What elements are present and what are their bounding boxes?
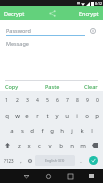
- staticText: Message: [6, 40, 29, 47]
- staticText: o: [85, 112, 89, 120]
- staticText: p: [95, 112, 99, 120]
- staticText: 8:12: [95, 1, 102, 6]
- staticText: 8: [76, 97, 79, 104]
- button[interactable]: c: [34, 139, 44, 152]
- staticText: c: [38, 142, 41, 150]
- button[interactable]: h: [57, 124, 67, 137]
- button[interactable]: Message: [6, 40, 97, 80]
- staticText: g: [50, 127, 54, 135]
- button[interactable]: Encrypt: [75, 6, 103, 20]
- button[interactable]: p: [92, 109, 102, 122]
- button[interactable]: Home: [37, 169, 59, 183]
- button[interactable]: z: [14, 139, 24, 152]
- button[interactable]: ,: [16, 154, 25, 167]
- button[interactable]: u: [62, 109, 72, 122]
- button[interactable]: o: [82, 109, 92, 122]
- button[interactable]: 7: [62, 93, 72, 107]
- button[interactable]: 6: [52, 93, 62, 107]
- button[interactable]: 3: [22, 93, 32, 107]
- button[interactable]: m: [77, 139, 88, 152]
- staticText: 7: [66, 97, 69, 104]
- staticText: x: [27, 142, 31, 150]
- staticText: m: [80, 142, 86, 150]
- staticText: e: [25, 112, 29, 120]
- staticText: a: [10, 127, 14, 135]
- button[interactable]: y: [52, 109, 62, 122]
- staticText: f: [41, 127, 44, 135]
- staticText: l: [91, 127, 93, 135]
- button[interactable]: Backspace: [88, 139, 102, 152]
- button[interactable]: 5: [42, 93, 52, 107]
- button[interactable]: 8: [72, 93, 82, 107]
- button[interactable]: 1: [1, 93, 12, 107]
- staticText: r: [36, 112, 39, 120]
- staticText: y: [55, 112, 59, 120]
- staticText: v: [48, 142, 52, 150]
- staticText: h: [60, 127, 64, 135]
- button[interactable]: r: [32, 109, 42, 122]
- button[interactable]: Decrypt: [0, 6, 29, 20]
- button[interactable]: Copy: [0, 81, 35, 91]
- staticText: English (US): [45, 158, 65, 163]
- button[interactable]: w: [12, 109, 22, 122]
- staticText: b: [59, 142, 63, 150]
- button[interactable]: 9: [82, 93, 92, 107]
- button[interactable]: q: [1, 109, 12, 122]
- button[interactable]: Recents: [59, 169, 81, 183]
- button[interactable]: t: [42, 109, 52, 122]
- staticText: n: [70, 142, 74, 150]
- staticText: w: [15, 112, 20, 120]
- button[interactable]: Hide keyboard: [81, 169, 101, 183]
- button[interactable]: Paste: [35, 81, 69, 91]
- button[interactable]: Change language: [25, 154, 34, 167]
- button[interactable]: j: [67, 124, 77, 137]
- staticText: Encrypt: [79, 10, 99, 17]
- button[interactable]: Back: [15, 169, 37, 183]
- staticText: k: [80, 127, 84, 135]
- staticText: Paste: [45, 83, 60, 90]
- staticText: s: [21, 127, 24, 135]
- staticText: 2: [16, 97, 19, 104]
- button[interactable]: d: [27, 124, 37, 137]
- button[interactable]: n: [66, 139, 77, 152]
- staticText: u: [65, 112, 69, 120]
- staticText: t: [46, 112, 49, 120]
- button[interactable]: x: [24, 139, 34, 152]
- staticText: ?123: [4, 158, 14, 164]
- button[interactable]: s: [17, 124, 27, 137]
- button[interactable]: 0: [92, 93, 102, 107]
- staticText: Decrypt: [4, 10, 25, 17]
- staticText: z: [18, 142, 21, 150]
- button[interactable]: f: [37, 124, 47, 137]
- staticText: i: [76, 112, 78, 120]
- button[interactable]: k: [77, 124, 87, 137]
- button[interactable]: g: [47, 124, 57, 137]
- staticText: j: [71, 127, 73, 135]
- button[interactable]: ?123: [1, 154, 16, 167]
- staticText: .: [80, 157, 82, 164]
- staticText: Clear: [84, 83, 98, 90]
- button[interactable]: v: [44, 139, 55, 152]
- button[interactable]: l: [87, 124, 97, 137]
- button[interactable]: Share: [46, 7, 58, 19]
- staticText: 5: [46, 97, 49, 104]
- button[interactable]: Shift: [1, 139, 14, 152]
- staticText: 0: [96, 97, 99, 104]
- button[interactable]: Password: [6, 26, 85, 35]
- staticText: Password: [6, 27, 31, 34]
- button[interactable]: Enter: [89, 156, 98, 165]
- button[interactable]: English (US): [35, 155, 75, 166]
- staticText: 6: [56, 97, 59, 104]
- button[interactable]: .: [76, 154, 85, 167]
- button[interactable]: a: [7, 124, 17, 137]
- button[interactable]: Clear: [69, 81, 103, 91]
- button[interactable]: i: [72, 109, 82, 122]
- button[interactable]: Info: [89, 27, 97, 35]
- button[interactable]: 4: [32, 93, 42, 107]
- button[interactable]: e: [22, 109, 32, 122]
- staticText: d: [30, 127, 34, 135]
- staticText: 1: [5, 97, 8, 104]
- button[interactable]: b: [55, 139, 66, 152]
- button[interactable]: 2: [12, 93, 22, 107]
- staticText: 9: [86, 97, 89, 104]
